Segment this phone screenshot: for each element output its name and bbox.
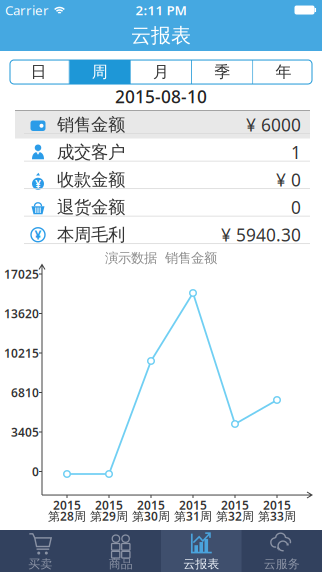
button[interactable]: 买卖 <box>0 530 80 572</box>
staticText: ¥ <box>35 177 41 191</box>
staticText: ¥ <box>34 227 41 243</box>
button[interactable]: 日 <box>8 60 69 84</box>
staticText: 云报表 <box>131 23 191 48</box>
button[interactable]: 云服务 <box>241 530 322 572</box>
staticText: Carrier <box>5 1 49 19</box>
staticText: 2015 <box>263 497 291 513</box>
staticText: 季 <box>214 62 230 82</box>
staticText: ¥ 5940.30 <box>221 223 301 246</box>
staticText: 销售金额 <box>57 114 125 135</box>
staticText: 演示数据 销售金额 <box>105 250 217 266</box>
staticText: ¥ 6000 <box>246 113 301 136</box>
button[interactable]: 销售金额 <box>0 111 322 138</box>
button[interactable]: ¥ <box>0 221 322 248</box>
staticText: 2015-08-10 <box>115 85 207 108</box>
staticText: 2015 <box>221 497 249 513</box>
staticText: 2:11 PM <box>135 1 186 19</box>
staticText: 3405 <box>11 424 39 440</box>
staticText: 0 <box>291 196 301 219</box>
button[interactable]: 周 <box>70 60 130 84</box>
staticText: 第33周 <box>258 508 296 524</box>
staticText: 第32周 <box>216 508 254 524</box>
staticText: 2015 <box>137 497 165 513</box>
staticText: 2015 <box>179 497 207 513</box>
staticText: 第31周 <box>174 508 212 524</box>
staticText: 10215 <box>4 345 39 361</box>
staticText: 周 <box>92 62 108 82</box>
staticText: 年 <box>275 62 291 82</box>
staticText: 0 <box>32 463 39 479</box>
staticText: 成交客户 <box>57 142 125 163</box>
staticText: 退货金额 <box>57 197 125 218</box>
staticText: 2015 <box>53 497 81 513</box>
staticText: 收款金额 <box>57 169 125 190</box>
staticText: 第29周 <box>90 508 128 524</box>
staticText: 13620 <box>4 305 39 321</box>
staticText: 云服务 <box>264 557 300 571</box>
button[interactable]: 月 <box>131 60 191 84</box>
staticText: ¥ 0 <box>276 168 301 191</box>
button[interactable]: ¥ <box>0 166 322 193</box>
staticText: 商品 <box>109 557 133 571</box>
button[interactable]: 成交客户 <box>0 138 322 166</box>
button[interactable]: 季 <box>192 60 252 84</box>
staticText: 6810 <box>11 384 39 400</box>
button[interactable]: 年 <box>253 60 314 84</box>
button[interactable]: 云报表 <box>161 530 241 572</box>
staticText: 月 <box>153 62 169 82</box>
staticText: 17025 <box>4 266 39 282</box>
staticText: 云报表 <box>183 557 219 571</box>
staticText: 本周毛利 <box>57 224 125 245</box>
button[interactable]: 商品 <box>80 530 161 572</box>
staticText: 2015 <box>95 497 123 513</box>
staticText: 买卖 <box>28 557 52 571</box>
staticText: 1 <box>291 141 301 164</box>
staticText: 第28周 <box>48 508 86 524</box>
staticText: 日 <box>31 62 47 82</box>
staticText: 第30周 <box>132 508 170 524</box>
button[interactable]: 退货金额 <box>0 193 322 221</box>
